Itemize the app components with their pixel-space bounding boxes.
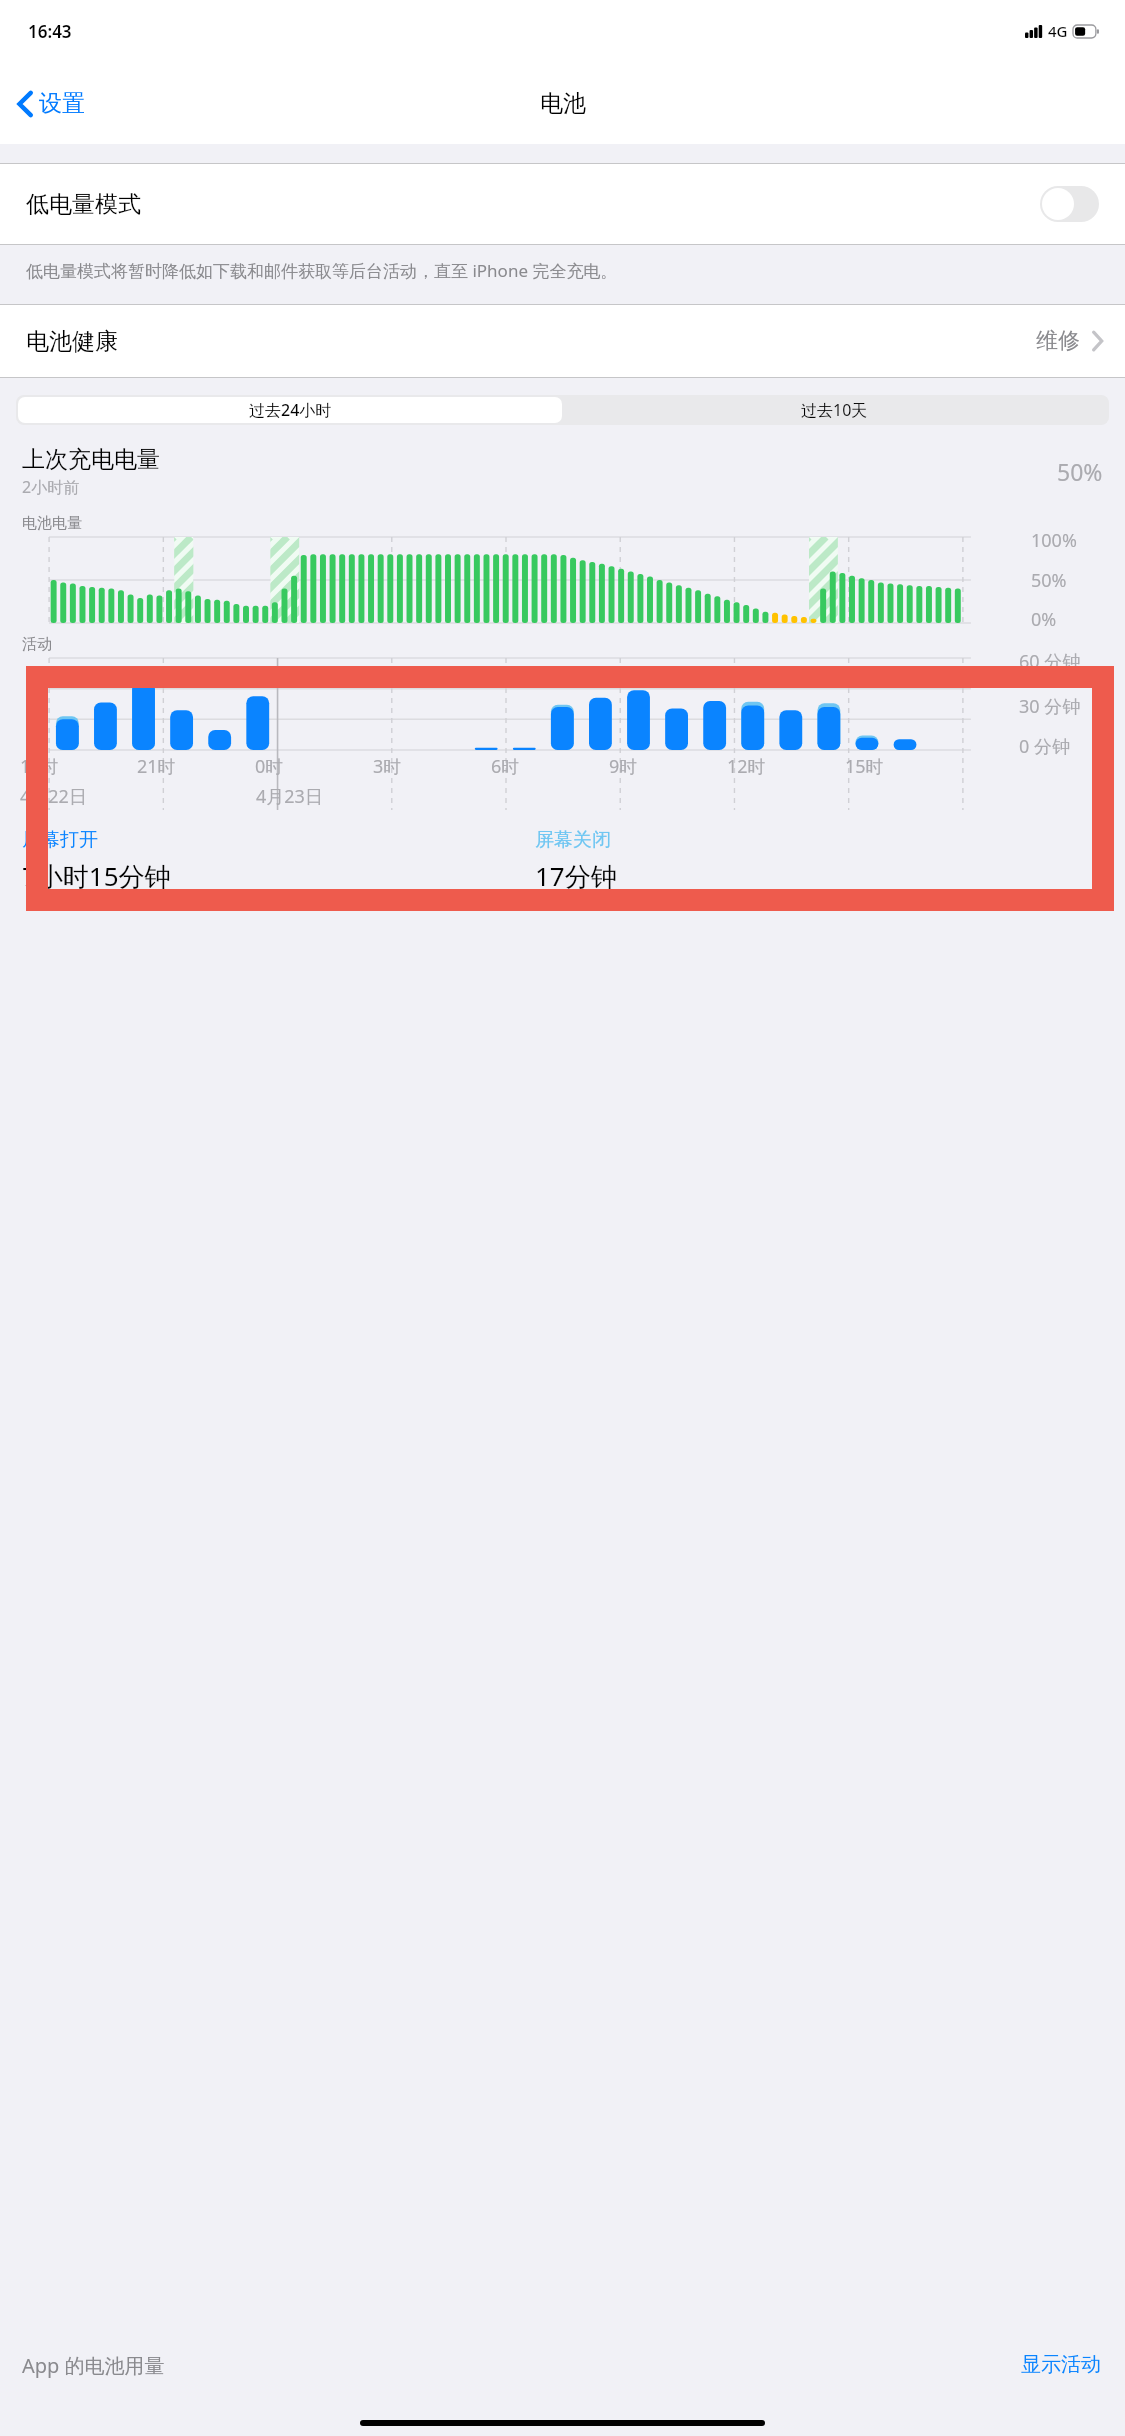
button[interactable]: 过去24小时 <box>18 397 562 423</box>
staticText: 21时 <box>137 754 176 779</box>
staticText: 低电量模式 <box>26 190 1040 219</box>
staticText: 过去10天 <box>801 399 868 421</box>
staticText: 0 分钟 <box>1019 734 1070 759</box>
staticText: App 的电池用量 <box>22 2352 165 2379</box>
staticText: 50% <box>1031 568 1067 593</box>
staticText: 6时 <box>491 754 520 779</box>
button[interactable]: 显示活动 <box>1021 2352 1101 2377</box>
staticText: 30 分钟 <box>1019 694 1081 719</box>
button[interactable]: 低电量模式 <box>0 164 1125 244</box>
button[interactable]: 电池健康 <box>0 305 1125 377</box>
staticText: 60 分钟 <box>1019 649 1081 674</box>
staticText: 4G <box>1048 21 1068 41</box>
staticText: 活动 <box>22 635 52 654</box>
staticText: 电池电量 <box>22 514 82 533</box>
staticText: 18时 <box>20 754 59 779</box>
staticText: 低电量模式将暂时降低如下载和邮件获取等后台活动，直至 iPhone 完全充电。 <box>26 259 618 282</box>
staticText: 50% <box>1057 456 1103 487</box>
staticText: 3时 <box>373 754 402 779</box>
staticText: 电池 <box>540 89 586 118</box>
staticText: 12时 <box>727 754 766 779</box>
staticText: 2小时前 <box>22 476 80 498</box>
staticText: 16:43 <box>28 20 72 43</box>
button[interactable]: 低电量模式开关 <box>1040 186 1099 222</box>
staticText: 4月22日 <box>20 784 87 809</box>
staticText: 电池健康 <box>26 327 1036 356</box>
staticText: 过去24小时 <box>249 399 332 421</box>
staticText: 0% <box>1031 607 1057 632</box>
staticText: 维修 <box>1036 327 1080 355</box>
staticText: 17分钟 <box>535 858 617 894</box>
staticText: 100% <box>1031 528 1077 553</box>
staticText: 9时 <box>609 754 638 779</box>
staticText: 设置 <box>39 89 85 118</box>
staticText: 15时 <box>845 754 884 779</box>
button[interactable]: 设置 <box>0 79 99 128</box>
staticText: 屏幕关闭 <box>535 828 611 852</box>
staticText: 屏幕打开 <box>22 828 98 852</box>
button[interactable]: 过去10天 <box>562 397 1107 423</box>
staticText: 4月23日 <box>256 784 323 809</box>
staticText: 0时 <box>255 754 284 779</box>
staticText: 上次充电电量 <box>22 445 160 474</box>
staticText: 7小时15分钟 <box>22 858 171 894</box>
